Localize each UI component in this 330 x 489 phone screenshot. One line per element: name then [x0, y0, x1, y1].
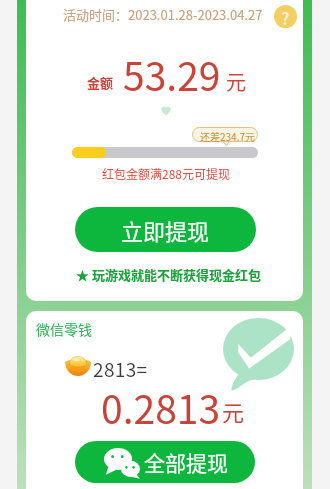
staticText: 金额 [87, 73, 114, 92]
staticText: 53.29 [123, 46, 221, 102]
staticText: 红包金额满288元可提现 [102, 165, 230, 182]
staticText: 2813= [93, 355, 148, 383]
staticText: ? [281, 5, 290, 28]
staticText: 元 [226, 67, 246, 96]
staticText: 元 [222, 395, 245, 427]
staticText: 活动时间：2023.01.28-2023.04.27 [63, 5, 263, 24]
button[interactable]: Help [274, 5, 297, 28]
staticText: 0.2813 [101, 379, 221, 435]
button[interactable]: 立即提现 [75, 207, 256, 252]
staticText: ★ 玩游戏就能不断获得现金红包 [76, 265, 261, 284]
staticText: 微信零钱 [36, 319, 92, 339]
staticText: 立即提现 [121, 214, 210, 246]
staticText: 还差234.7元 [200, 129, 255, 143]
staticText: 全部提现 [144, 447, 228, 477]
button[interactable]: 全部提现 [75, 441, 255, 483]
